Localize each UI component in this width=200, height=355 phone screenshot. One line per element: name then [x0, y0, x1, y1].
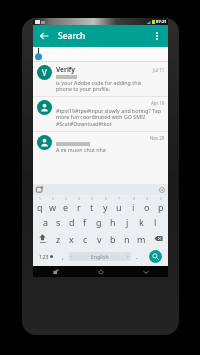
button[interactable]: Backspace [148, 230, 168, 247]
staticText: V [42, 67, 47, 78]
button[interactable]: 2 [46, 195, 59, 213]
staticText: 0 [160, 196, 162, 201]
button[interactable]: x [65, 230, 78, 247]
button[interactable]: Apr 16 [33, 97, 168, 131]
staticText: a [43, 216, 49, 228]
button[interactable]: l [148, 213, 162, 230]
button[interactable]: 1 [33, 195, 46, 213]
staticText: p [158, 201, 164, 213]
staticText: s [56, 216, 61, 228]
button[interactable]: m [134, 230, 148, 247]
staticText: Apr 16 [151, 100, 165, 106]
button[interactable]: j [120, 213, 134, 230]
staticText: y [103, 201, 108, 213]
staticText: #tpst19#tpe#input slowly and boring? Tap… [56, 107, 162, 128]
button[interactable]: Back [123, 266, 168, 277]
button[interactable]: . [131, 247, 143, 266]
staticText: 9 [146, 196, 148, 201]
staticText: 6 [105, 196, 107, 201]
button[interactable]: z [52, 230, 65, 247]
staticText: v [97, 233, 102, 245]
staticText: 123 [39, 253, 49, 260]
button[interactable]: , [57, 247, 69, 266]
button[interactable]: f [78, 213, 92, 230]
staticText: h [110, 216, 116, 228]
button[interactable]: d [65, 213, 78, 230]
staticText: f [83, 216, 87, 228]
button[interactable]: Home [78, 266, 123, 277]
staticText: k [139, 216, 144, 228]
button[interactable]: 3 [59, 195, 72, 213]
staticText: 07:21 [156, 19, 167, 25]
staticText: c [83, 233, 88, 245]
button[interactable]: 0 [154, 195, 168, 213]
button[interactable]: Search [143, 247, 167, 266]
button[interactable]: 6 [98, 195, 112, 213]
staticText: Nov 29 [150, 135, 165, 141]
button[interactable]: ‹ [69, 252, 131, 261]
button[interactable]: V [33, 62, 168, 96]
staticText: . [136, 252, 138, 262]
button[interactable]: c [78, 230, 92, 247]
button[interactable]: Back [33, 25, 55, 47]
staticText: o [144, 201, 150, 213]
button[interactable]: b [106, 230, 120, 247]
staticText: 8 [133, 196, 135, 201]
staticText: n [124, 233, 130, 245]
staticText: m [137, 233, 146, 245]
staticText: i [132, 201, 135, 213]
button[interactable]: 7 [112, 195, 126, 213]
staticText: English [91, 253, 109, 260]
staticText: 2 [52, 196, 54, 201]
staticText: x [69, 233, 74, 245]
staticText: 1 [39, 196, 41, 201]
staticText: z [56, 233, 61, 245]
staticText: w [49, 201, 57, 213]
button[interactable]: 8 [126, 195, 140, 213]
button[interactable]: n [120, 230, 134, 247]
button[interactable]: 9 [140, 195, 154, 213]
button[interactable]: More options [146, 25, 168, 47]
button[interactable]: k [134, 213, 148, 230]
button[interactable]: v [92, 230, 106, 247]
staticText: t [90, 201, 94, 213]
staticText: › [127, 253, 129, 260]
button[interactable]: Shift [33, 230, 52, 247]
staticText: Jul 11 [153, 67, 165, 73]
button[interactable]: g [92, 213, 106, 230]
staticText: 7 [118, 196, 120, 201]
button[interactable]: 123 [34, 247, 57, 266]
staticText: ‹ [71, 253, 73, 260]
staticText: d [69, 216, 75, 228]
button[interactable]: 4 [72, 195, 85, 213]
button[interactable]: Sticker [36, 186, 43, 193]
staticText: e [63, 201, 69, 213]
staticText: r [77, 201, 81, 213]
staticText: , [62, 252, 64, 262]
button[interactable]: Settings [158, 186, 165, 193]
staticText: u [116, 201, 122, 213]
button[interactable]: a [39, 213, 52, 230]
staticText: 5 [91, 196, 93, 201]
staticText: 4 [78, 196, 80, 201]
staticText: l [154, 216, 157, 228]
staticText: is your Adobe code for adding this phone… [56, 79, 142, 93]
staticText: g [96, 216, 102, 228]
button[interactable]: 5 [85, 195, 98, 213]
staticText: Search [58, 30, 86, 42]
button[interactable]: s [52, 213, 65, 230]
staticText: j [126, 216, 129, 228]
button[interactable]: Nov 29 [33, 132, 168, 156]
staticText: 3 [65, 196, 67, 201]
staticText: Verify [56, 65, 76, 74]
staticText: b [110, 233, 116, 245]
button[interactable]: Recents [33, 266, 78, 277]
staticText: A ve muon chut nha [56, 146, 106, 153]
button[interactable]: h [106, 213, 120, 230]
staticText: q [37, 201, 43, 213]
